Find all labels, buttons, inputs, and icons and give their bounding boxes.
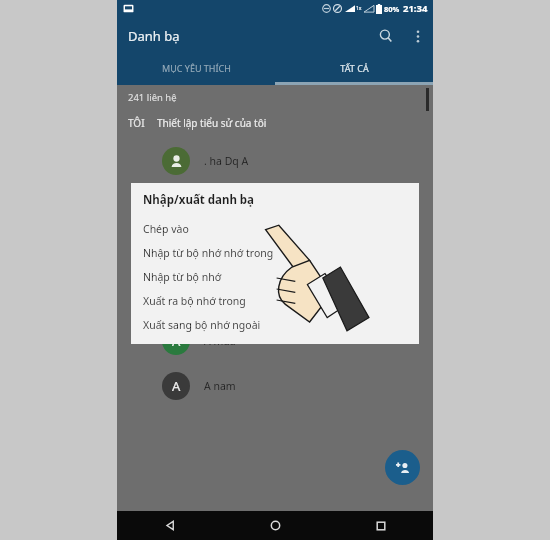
- staticText: TẤT CẢ: [340, 62, 369, 74]
- button[interactable]: Xuất ra bộ nhớ trong: [131, 289, 419, 313]
- button[interactable]: . ha Dq A: [117, 138, 433, 183]
- staticText: Nhập từ bộ nhớ: [143, 270, 222, 284]
- button[interactable]: A: [117, 183, 433, 228]
- button[interactable]: Recent apps: [328, 511, 433, 540]
- staticText: TÔI: [128, 116, 145, 130]
- button[interactable]: Search: [369, 19, 403, 53]
- button[interactable]: Chép vào: [131, 217, 419, 241]
- staticText: Chép vào: [143, 222, 189, 236]
- button[interactable]: Nhập từ bộ nhớ nhớ trong: [131, 241, 419, 265]
- staticText: 80%: [384, 4, 400, 14]
- button[interactable]: Xuất sang bộ nhớ ngoài: [131, 313, 419, 337]
- staticText: 241 liên hệ: [128, 91, 177, 104]
- staticText: A huy: [204, 289, 232, 303]
- button[interactable]: A: [117, 273, 433, 318]
- staticText: A: [172, 287, 181, 305]
- staticText: A nam: [204, 379, 236, 393]
- staticText: Nhập từ bộ nhớ nhớ trong: [143, 246, 274, 260]
- staticText: A: [172, 377, 181, 395]
- button[interactable]: Home: [223, 511, 328, 540]
- staticText: A dung: [204, 199, 240, 213]
- button[interactable]: A: [117, 363, 433, 408]
- button[interactable]: Add contact: [385, 450, 420, 485]
- staticText: Xuất sang bộ nhớ ngoài: [143, 318, 261, 332]
- staticText: A: [172, 242, 181, 260]
- staticText: Danh bạ: [128, 27, 180, 45]
- staticText: A mua: [204, 334, 236, 348]
- staticText: Xuất ra bộ nhớ trong: [143, 294, 246, 308]
- staticText: A hai: [204, 244, 229, 258]
- button[interactable]: A: [117, 228, 433, 273]
- staticText: Nhập/xuất danh bạ: [143, 192, 254, 208]
- staticText: A: [172, 197, 181, 215]
- button[interactable]: TÔI: [117, 116, 433, 130]
- staticText: 1x: [356, 5, 362, 12]
- button[interactable]: Back: [117, 511, 223, 540]
- button[interactable]: More options: [403, 21, 433, 51]
- staticText: 21:34: [403, 2, 428, 15]
- staticText: . ha Dq A: [204, 154, 249, 168]
- button[interactable]: TẤT CẢ: [275, 54, 433, 82]
- button[interactable]: MỤC YÊU THÍCH: [117, 54, 275, 82]
- staticText: MỤC YÊU THÍCH: [162, 62, 231, 74]
- staticText: A: [172, 332, 181, 350]
- staticText: Thiết lập tiểu sử của tôi: [157, 116, 267, 130]
- button[interactable]: A: [117, 318, 433, 363]
- button[interactable]: Nhập từ bộ nhớ: [131, 265, 419, 289]
